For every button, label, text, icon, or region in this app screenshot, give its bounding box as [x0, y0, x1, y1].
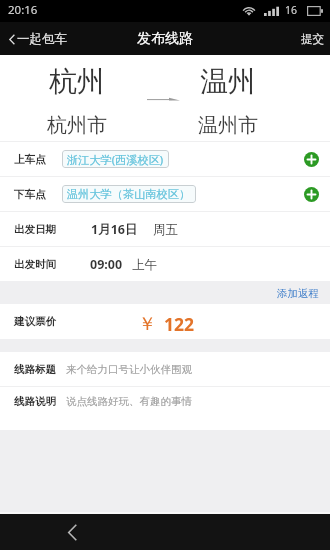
staticText: 20:16 — [8, 2, 38, 18]
staticText: 出发日期 — [14, 223, 56, 236]
staticText: 下车点 — [14, 188, 46, 201]
button[interactable]: 添加返程 — [266, 283, 330, 302]
button[interactable]: 提交 — [295, 26, 330, 52]
button[interactable]: 温州 — [154, 55, 302, 138]
button[interactable]: 杭州 — [3, 55, 151, 138]
staticText: 建议票价 — [14, 315, 56, 328]
staticText: 来个给力口号让小伙伴围观 — [66, 363, 192, 376]
button[interactable]: 建议票价 — [0, 304, 330, 338]
staticText: 出发时间 — [14, 258, 56, 271]
staticText: 上午 — [132, 257, 157, 273]
staticText: 上车点 — [14, 153, 46, 166]
button[interactable]: 线路标题 — [0, 352, 330, 386]
staticText: 周五 — [153, 222, 178, 238]
staticText: 线路标题 — [14, 363, 56, 376]
staticText: 浙江大学(西溪校区) — [67, 152, 164, 167]
button[interactable]: 一起包车 — [0, 25, 77, 53]
button[interactable]: 添加地点 — [304, 152, 319, 167]
button[interactable]: 上车点 — [0, 142, 330, 176]
staticText: 添加返程 — [277, 287, 319, 300]
staticText: 温州市 — [198, 113, 258, 138]
button[interactable]: 出发日期 — [0, 212, 330, 246]
staticText: 温州大学（茶山南校区） — [67, 187, 191, 201]
staticText: 一起包车 — [17, 31, 67, 47]
staticText: 温州 — [200, 64, 256, 99]
staticText: 发布线路 — [137, 30, 193, 48]
staticText: 杭州 — [49, 64, 105, 99]
button[interactable]: 下车点 — [0, 177, 330, 211]
staticText: 122 — [164, 312, 195, 336]
staticText: ￥ — [138, 313, 156, 336]
staticText: 09:00 — [90, 256, 123, 273]
staticText: 线路说明 — [14, 395, 56, 408]
button[interactable]: 线路说明 — [0, 387, 330, 430]
button[interactable]: 返回 — [50, 514, 94, 550]
staticText: 杭州市 — [47, 113, 107, 138]
staticText: 1月16日 — [91, 221, 138, 238]
staticText: 16 — [285, 3, 298, 17]
staticText: 说点线路好玩、有趣的事情 — [66, 395, 192, 408]
button[interactable]: 出发时间 — [0, 247, 330, 281]
button[interactable]: 添加地点 — [304, 187, 319, 202]
staticText: 提交 — [301, 32, 324, 46]
